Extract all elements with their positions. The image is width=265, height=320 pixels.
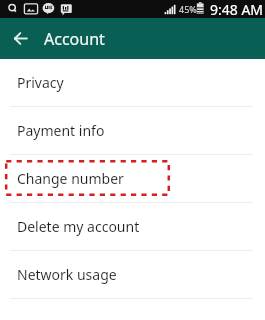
staticText: Privacy — [17, 73, 64, 92]
button[interactable]: Change number — [0, 155, 265, 203]
staticText: 45% — [179, 3, 197, 15]
staticText: Account — [44, 28, 105, 50]
staticText: Delete my account — [17, 217, 140, 236]
button[interactable]: Network usage — [0, 251, 265, 299]
staticText: Payment info — [17, 121, 105, 140]
staticText: 9:48 AM — [210, 0, 264, 18]
button[interactable]: Privacy — [0, 59, 265, 107]
button[interactable]: Navigate up — [0, 18, 41, 59]
staticText: Change number — [17, 169, 124, 188]
button[interactable]: Payment info — [0, 107, 265, 155]
button[interactable]: Delete my account — [0, 203, 265, 251]
staticText: Network usage — [17, 265, 117, 284]
